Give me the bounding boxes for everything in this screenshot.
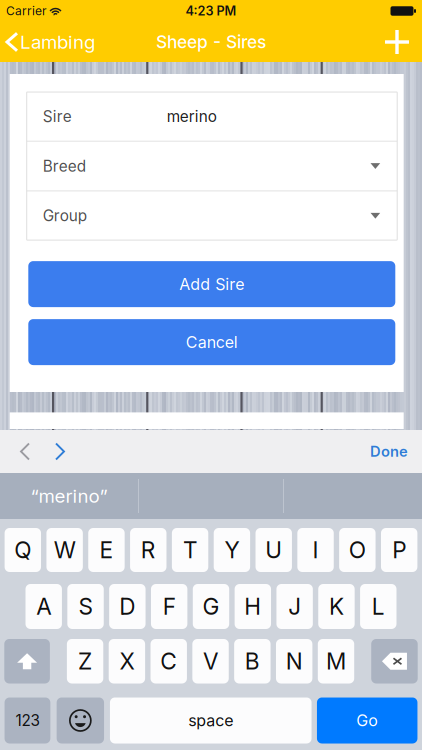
staticText: H [244,593,261,620]
button[interactable]: M [318,639,354,683]
staticText: K [329,593,344,620]
staticText: M [326,647,346,675]
staticText: T [183,536,197,564]
button[interactable]: E [88,528,125,572]
staticText: N [286,647,303,675]
staticText: F [163,593,176,620]
staticText: A [36,593,51,620]
button[interactable]: Go [317,697,417,743]
staticText: W [54,536,76,564]
staticText: G [202,593,219,620]
button[interactable]: K [318,584,355,629]
button[interactable] [4,639,50,683]
staticText: Breed [43,157,86,175]
button[interactable]: I [297,528,334,572]
button[interactable]: B [234,639,271,683]
button[interactable]: Sire [27,92,397,141]
staticText: B [245,647,260,675]
button[interactable]: F [151,584,187,629]
staticText: Sheep - Sires [156,31,266,52]
staticText: L [372,593,385,620]
staticText: E [99,536,113,564]
staticText: Add Sire [179,274,244,294]
staticText: Z [78,647,92,675]
button[interactable]: space [110,697,312,743]
staticText: Group [43,206,87,225]
staticText: 123 [15,711,39,730]
button[interactable]: Previous field [0,430,43,473]
staticText: Y [224,536,239,564]
button[interactable]: T [172,528,208,572]
staticText: R [141,536,156,564]
button[interactable]: Z [67,639,103,683]
button[interactable]: A [25,584,62,629]
button[interactable]: U [255,528,292,572]
staticText: O [349,536,366,564]
staticText: Q [14,536,31,564]
button[interactable]: R [130,528,166,572]
staticText: Carrier [6,4,47,18]
staticText: D [119,593,135,620]
button[interactable]: Cancel [28,319,395,365]
button[interactable]: Group [27,191,397,240]
button[interactable] [371,639,418,683]
staticText: merino [167,107,217,126]
button[interactable]: J [276,584,313,629]
button[interactable]: Add [372,22,422,62]
button[interactable]: D [109,584,146,629]
staticText: “merino” [30,485,107,507]
button[interactable]: S [67,584,104,629]
staticText: Done [370,443,408,460]
button[interactable]: Next field [43,430,77,473]
staticText: X [119,647,134,675]
button[interactable]: O [339,528,376,572]
button[interactable]: L [360,584,396,629]
staticText: J [288,593,301,620]
button[interactable]: G [193,584,229,629]
button[interactable]: V [192,639,229,683]
staticText: C [160,647,177,675]
button[interactable]: W [46,528,83,572]
button[interactable]: Add Sire [28,261,395,307]
button[interactable]: Y [214,528,250,572]
button[interactable]: Lambing [0,22,103,62]
staticText: 4:23 PM [185,3,236,19]
staticText: Lambing [20,31,95,53]
button[interactable]: X [109,639,145,683]
button[interactable] [57,697,104,743]
staticText: space [188,711,233,730]
button[interactable]: 123 [5,697,50,743]
staticText: Sire [43,107,72,126]
staticText: U [265,536,282,564]
button[interactable]: Done [370,430,422,473]
button[interactable]: N [276,639,312,683]
staticText: P [392,536,406,564]
staticText: Go [356,711,378,730]
button[interactable]: Q [5,528,41,572]
button[interactable]: “merino” [0,473,138,519]
staticText: I [313,536,319,564]
button[interactable]: Breed [27,142,397,190]
button[interactable]: P [381,528,417,572]
button[interactable]: H [235,584,271,629]
staticText: V [203,647,218,675]
staticText: Cancel [186,332,238,352]
staticText: S [78,593,92,620]
button[interactable]: C [150,639,187,683]
